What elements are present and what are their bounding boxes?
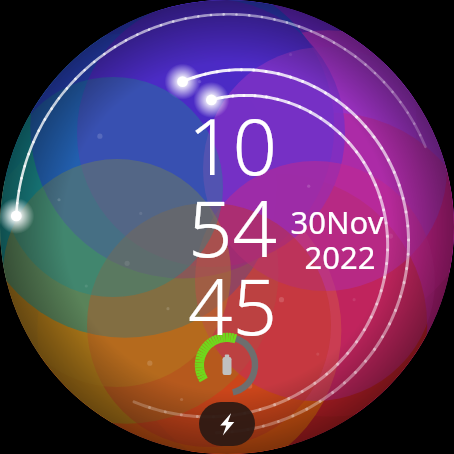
button[interactable]: Charging [199, 402, 255, 446]
